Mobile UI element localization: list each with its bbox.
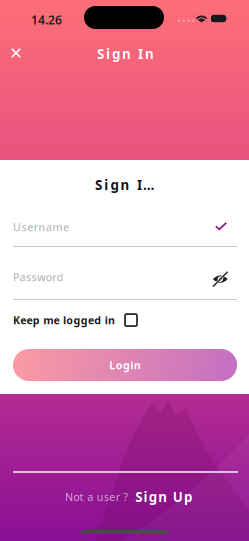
staticText: Password bbox=[13, 270, 64, 284]
staticText: Not a user ? bbox=[65, 490, 128, 504]
button[interactable]: Show password bbox=[209, 269, 233, 289]
staticText: Keep me logged in bbox=[13, 313, 115, 327]
staticText: Sign In bbox=[95, 176, 153, 194]
button[interactable]: Keep me logged in bbox=[13, 313, 137, 327]
button[interactable]: Close bbox=[2, 39, 30, 67]
button[interactable]: Login bbox=[13, 349, 237, 381]
staticText: Sign In bbox=[97, 45, 154, 63]
staticText: Username bbox=[13, 220, 69, 234]
button[interactable]: Not a user ? bbox=[4, 488, 249, 506]
staticText: 14.26 bbox=[31, 12, 62, 28]
staticText: Sign Up bbox=[135, 488, 192, 506]
staticText: Login bbox=[109, 358, 141, 372]
